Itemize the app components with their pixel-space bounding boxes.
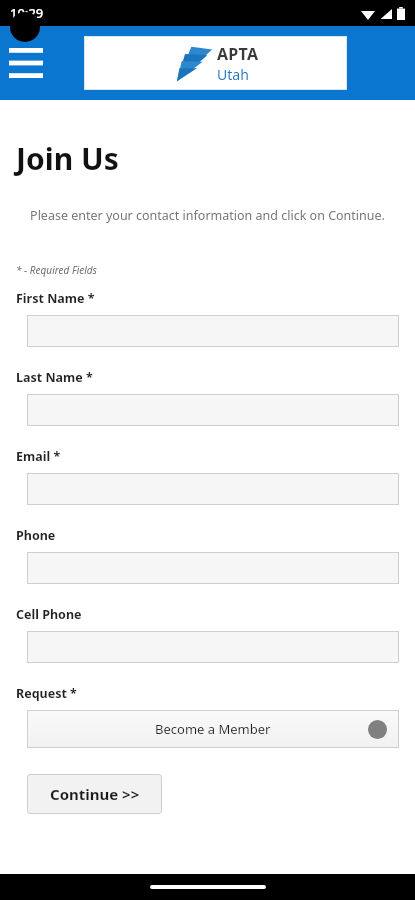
button[interactable]: Email * — [27, 473, 399, 505]
button[interactable]: First Name * — [27, 315, 399, 347]
button[interactable]: Request selection — [27, 710, 399, 748]
staticText: Continue >> — [50, 784, 140, 804]
button[interactable]: Last Name * — [27, 394, 399, 426]
staticText: Please enter your contact information an… — [20, 207, 395, 224]
staticText: APTA — [217, 43, 259, 65]
staticText: Cell Phone — [16, 606, 82, 623]
staticText: Join Us — [16, 138, 119, 179]
staticText: 10:29 — [10, 4, 44, 22]
staticText: Become a Member — [155, 720, 271, 738]
button[interactable]: Cell Phone — [27, 631, 399, 663]
staticText: Phone — [16, 527, 56, 544]
button[interactable]: Continue >> — [27, 774, 162, 814]
button[interactable]: Phone — [27, 552, 399, 584]
staticText: * - Required Fields — [16, 263, 97, 277]
staticText: Email * — [16, 448, 61, 465]
button[interactable]: APTA Utah home — [84, 36, 347, 90]
staticText: Utah — [217, 65, 249, 84]
staticText: First Name * — [16, 290, 95, 307]
button[interactable]: Open navigation menu — [4, 41, 48, 85]
staticText: Request * — [16, 685, 77, 702]
staticText: Last Name * — [16, 369, 93, 386]
